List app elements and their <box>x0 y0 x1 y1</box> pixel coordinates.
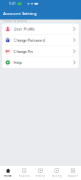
staticText: Support <box>67 174 78 177</box>
button[interactable]: Invoice <box>32 166 49 180</box>
staticText: Help <box>13 60 21 65</box>
button[interactable]: Change Password <box>2 35 79 45</box>
button[interactable]: Reports <box>16 166 32 180</box>
staticText: Home <box>4 174 12 177</box>
staticText: User Profile <box>13 26 34 32</box>
staticText: Account Setting <box>3 11 37 16</box>
staticText: Change Pin <box>13 49 32 54</box>
staticText: 9:41 <box>9 2 16 5</box>
button[interactable]: Home <box>0 166 16 180</box>
button[interactable]: Setting <box>49 166 65 180</box>
button[interactable]: Support <box>65 166 81 180</box>
button[interactable]: Help <box>2 57 79 68</box>
staticText: Setting <box>52 174 62 177</box>
staticText: Profile & Setting <box>3 19 27 23</box>
button[interactable]: Change Pin <box>2 46 79 57</box>
button[interactable]: User Profile <box>2 23 79 34</box>
staticText: Reports <box>19 174 30 177</box>
staticText: Change Password <box>13 37 44 43</box>
staticText: Invoice <box>35 174 45 177</box>
